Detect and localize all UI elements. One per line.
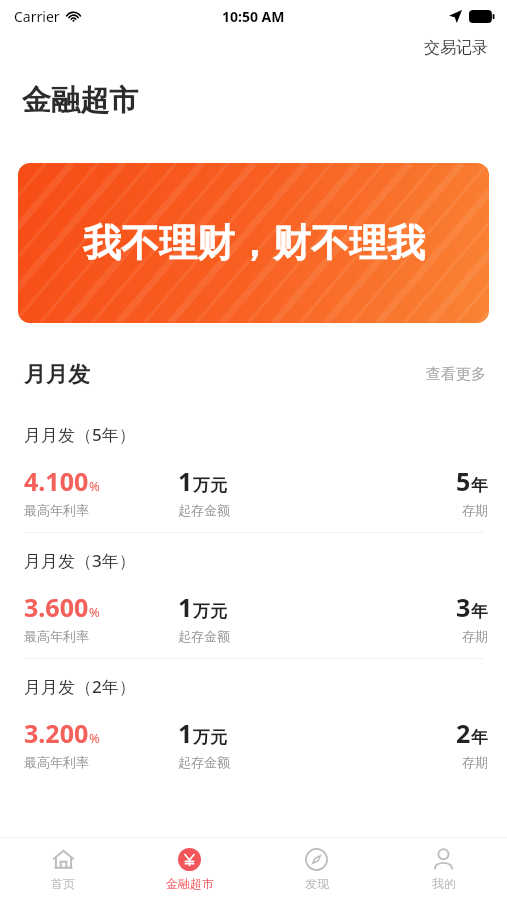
staticText: 5	[456, 464, 471, 498]
staticText: 最高年利率	[24, 502, 89, 518]
staticText: 年	[471, 475, 488, 496]
staticText: 1	[178, 464, 193, 498]
staticText: 10:50 AM	[222, 7, 285, 26]
staticText: 金融超市	[166, 876, 214, 891]
staticText: %	[89, 603, 100, 621]
button[interactable]: 我的	[380, 842, 507, 897]
staticText: 我的	[432, 876, 456, 891]
staticText: 我不理财，财不理我	[83, 219, 425, 267]
staticText: 万元	[193, 475, 227, 496]
button[interactable]: 我不理财，财不理我	[18, 163, 489, 323]
staticText: 金融超市	[22, 82, 138, 119]
staticText: 4.100	[24, 464, 89, 498]
staticText: 起存金额	[178, 502, 230, 518]
staticText: 万元	[193, 601, 227, 622]
button[interactable]: 月月发（5年）	[0, 407, 507, 532]
staticText: 最高年利率	[24, 628, 89, 644]
button[interactable]: 查看更多	[424, 359, 488, 390]
staticText: 存期	[462, 502, 488, 518]
staticText: %	[89, 729, 100, 747]
staticText: 月月发	[24, 361, 90, 389]
staticText: Carrier	[14, 7, 60, 26]
staticText: 3.600	[24, 590, 89, 624]
staticText: %	[89, 477, 100, 495]
other: 金融超市	[178, 848, 201, 871]
staticText: 年	[471, 727, 488, 748]
button[interactable]: 交易记录	[405, 33, 507, 63]
staticText: 存期	[462, 628, 488, 644]
button[interactable]: 发现	[253, 842, 380, 897]
button[interactable]: 月月发（3年）	[0, 533, 507, 658]
button[interactable]: 首页	[0, 842, 126, 897]
other: 发现	[305, 848, 328, 871]
staticText: 最高年利率	[24, 754, 89, 770]
staticText: 首页	[51, 876, 75, 891]
staticText: 交易记录	[424, 38, 488, 58]
staticText: 月月发（2年）	[24, 675, 136, 698]
staticText: 1	[178, 716, 193, 750]
staticText: 月月发（3年）	[24, 549, 136, 572]
staticText: 万元	[193, 727, 227, 748]
staticText: 存期	[462, 754, 488, 770]
staticText: 起存金额	[178, 628, 230, 644]
staticText: 年	[471, 601, 488, 622]
other: 我的	[432, 848, 455, 871]
button[interactable]: 金融超市	[126, 842, 253, 897]
button[interactable]: 月月发（2年）	[0, 659, 507, 784]
other: 首页	[52, 848, 75, 871]
staticText: 查看更多	[426, 365, 486, 384]
staticText: 起存金额	[178, 754, 230, 770]
staticText: 3.200	[24, 716, 89, 750]
staticText: 3	[456, 590, 471, 624]
staticText: 1	[178, 590, 193, 624]
staticText: 月月发（5年）	[24, 423, 136, 446]
staticText: 2	[456, 716, 471, 750]
staticText: 发现	[305, 876, 329, 891]
